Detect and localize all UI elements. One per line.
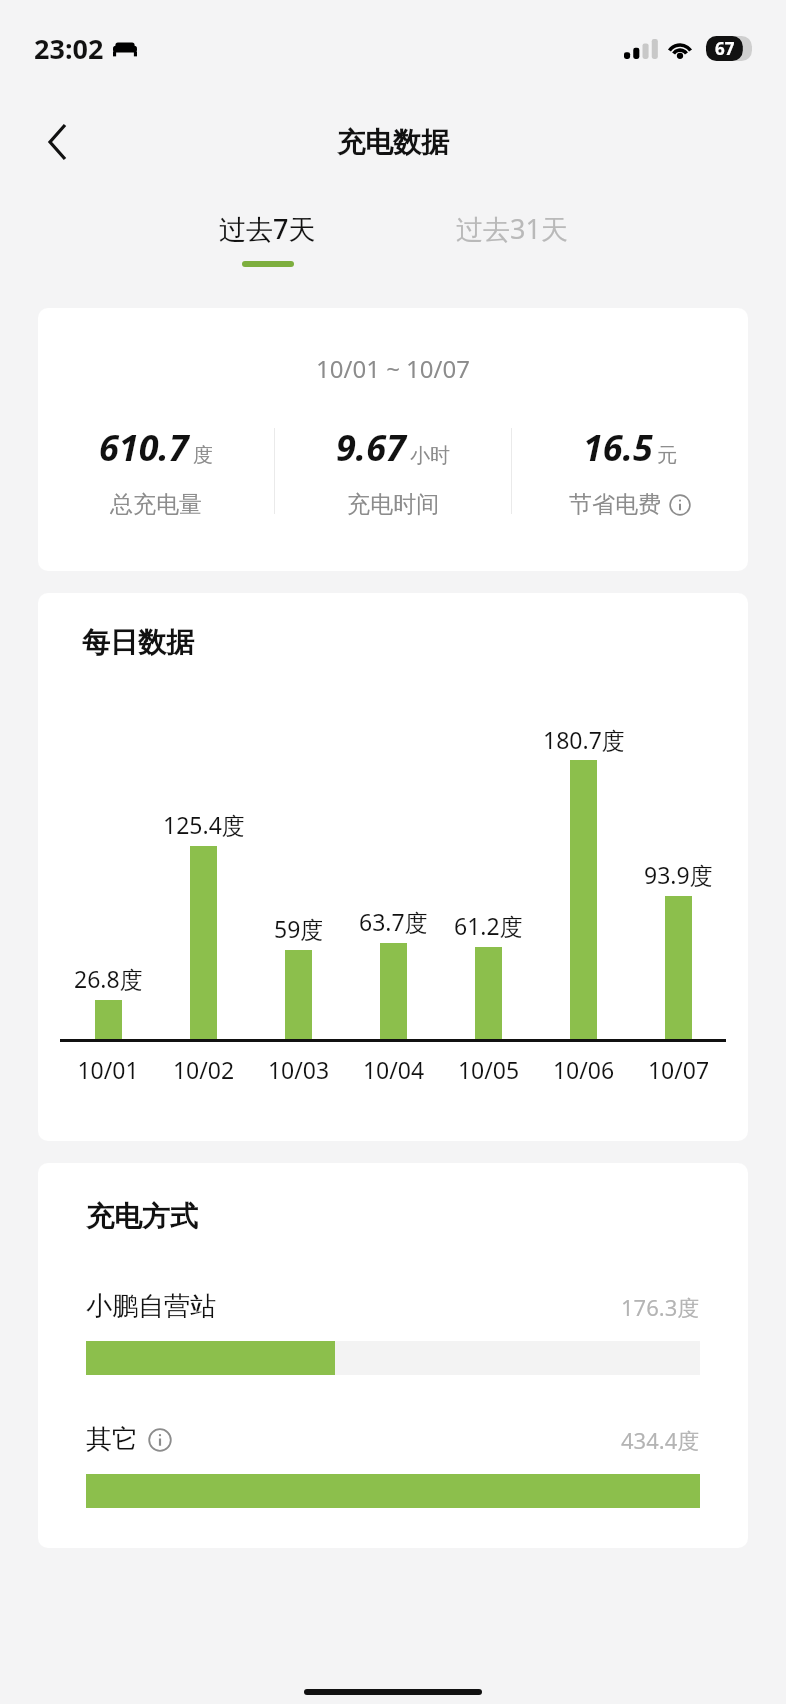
staticText: 59度 xyxy=(274,913,324,944)
button[interactable]: 每日数据 xyxy=(38,593,748,1141)
staticText: 小时 xyxy=(410,443,450,468)
staticText: 每日数据 xyxy=(82,625,194,660)
button[interactable]: 过去7天 xyxy=(193,188,342,267)
staticText: 610.7 xyxy=(99,423,189,472)
staticText: 63.7度 xyxy=(359,906,428,937)
staticText: 充电数据 xyxy=(337,125,449,160)
staticText: 小鹏自营站 xyxy=(86,1290,216,1323)
staticText: 10/05 xyxy=(441,1054,536,1085)
staticText: 度 xyxy=(193,443,213,468)
staticText: 125.4度 xyxy=(163,809,245,840)
staticText: 176.3度 xyxy=(621,1292,700,1322)
staticText: 180.7度 xyxy=(543,724,625,754)
staticText: 10/07 xyxy=(631,1054,726,1085)
staticText: 16.5 xyxy=(583,423,653,472)
button[interactable]: 充电方式 xyxy=(38,1163,748,1548)
staticText: 67 xyxy=(715,37,735,60)
staticText: 10/01 ~ 10/07 xyxy=(38,352,748,385)
staticText: 10/02 xyxy=(156,1054,251,1085)
staticText: 93.9度 xyxy=(644,859,713,890)
staticText: 节省电费 xyxy=(569,490,661,519)
staticText: 10/04 xyxy=(346,1054,441,1085)
staticText: 其它 xyxy=(86,1423,138,1456)
button[interactable]: Back xyxy=(30,114,86,170)
staticText: 充电时间 xyxy=(347,490,439,519)
staticText: 10/03 xyxy=(251,1054,346,1085)
staticText: 充电方式 xyxy=(86,1199,198,1234)
staticText: 过去7天 xyxy=(219,210,316,247)
staticText: 过去31天 xyxy=(456,210,568,247)
staticText: 总充电量 xyxy=(110,490,202,519)
staticText: 434.4度 xyxy=(621,1425,700,1455)
button[interactable]: 过去31天 xyxy=(430,188,594,247)
staticText: 23:02 xyxy=(34,30,104,67)
button[interactable]: 10/01 ~ 10/07 xyxy=(38,308,748,571)
staticText: 9.67 xyxy=(336,423,406,472)
staticText: 10/06 xyxy=(536,1054,631,1085)
staticText: 10/01 xyxy=(60,1054,156,1085)
staticText: 26.8度 xyxy=(74,963,143,994)
staticText: 61.2度 xyxy=(454,910,523,941)
staticText: 元 xyxy=(657,443,677,468)
